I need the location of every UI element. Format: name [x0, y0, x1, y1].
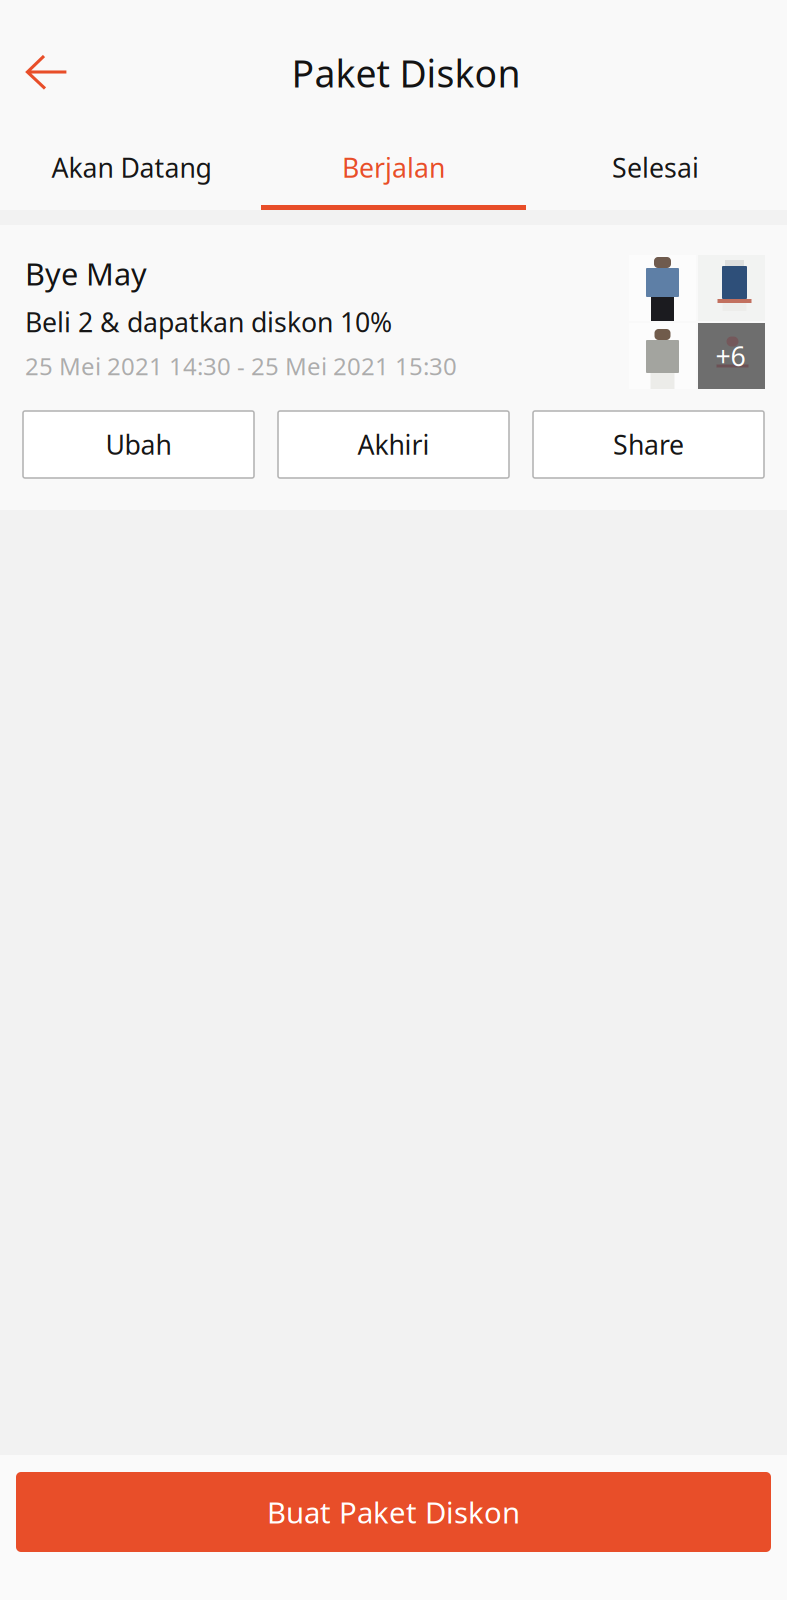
staticText: Selesai — [612, 150, 699, 185]
staticText: Beli 2 & dapatkan diskon 10% — [25, 304, 392, 340]
staticText: +6 — [715, 338, 745, 374]
button[interactable]: Bye May — [0, 249, 787, 411]
button[interactable]: Share — [533, 411, 764, 478]
staticText: Akan Datang — [51, 150, 211, 185]
staticText: Paket Diskon — [291, 48, 520, 98]
button[interactable]: Selesai — [524, 140, 786, 210]
button[interactable]: Back — [0, 24, 100, 116]
button[interactable]: Akan Datang — [0, 140, 262, 210]
button[interactable]: Berjalan — [262, 140, 524, 210]
button[interactable]: Buat Paket Diskon — [16, 1472, 771, 1552]
button[interactable]: Ubah — [23, 411, 254, 478]
staticText: Akhiri — [357, 427, 429, 462]
staticText: Bye May — [25, 253, 147, 294]
staticText: Buat Paket Diskon — [267, 1492, 520, 1531]
staticText: 25 Mei 2021 14:30 - 25 Mei 2021 15:30 — [25, 350, 457, 382]
staticText: Ubah — [105, 427, 171, 462]
button[interactable]: Akhiri — [278, 411, 509, 478]
staticText: Share — [613, 427, 684, 462]
staticText: Berjalan — [342, 150, 445, 185]
